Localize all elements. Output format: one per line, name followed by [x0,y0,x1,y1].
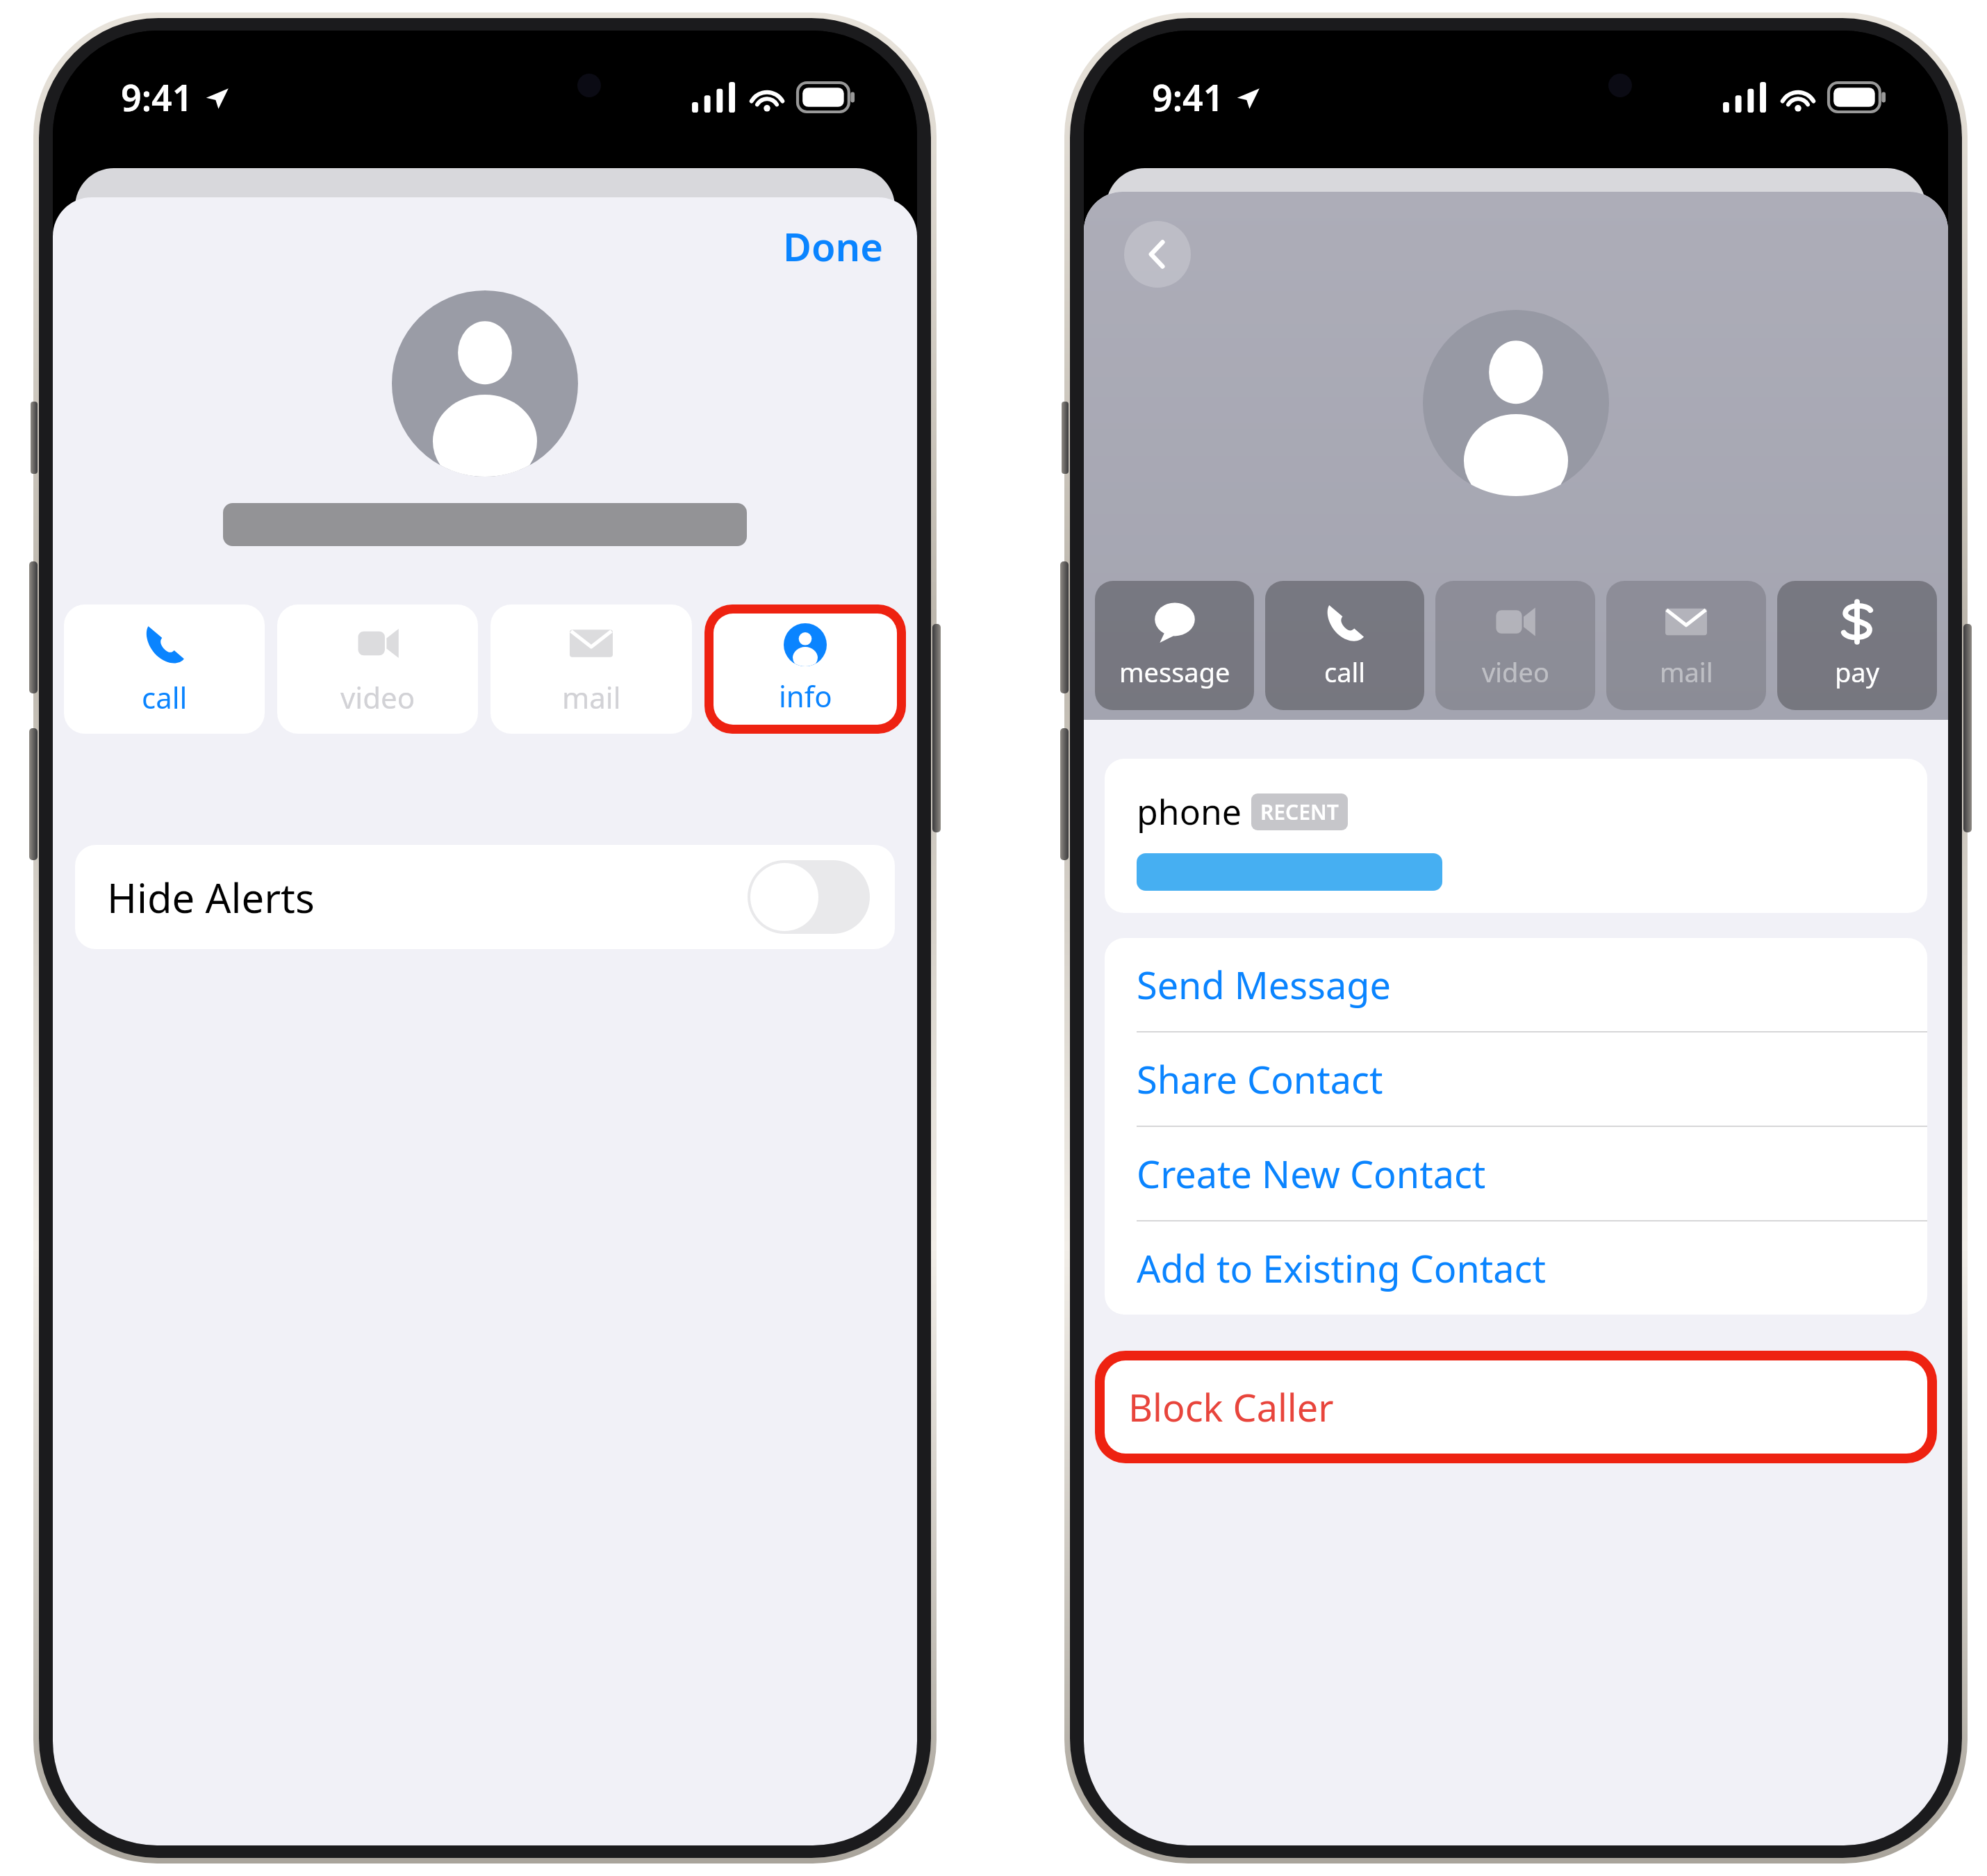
button[interactable]: Done [750,207,917,285]
staticText: mail [562,677,621,717]
button[interactable]: info [714,614,897,725]
staticText: call [1324,654,1366,690]
button[interactable]: Add to Existing Contact [1105,1221,1927,1315]
staticText: mail [1660,654,1713,690]
staticText: Create New Contact [1137,1148,1486,1199]
staticText: message [1119,654,1230,690]
button[interactable]: message [1095,581,1254,710]
button[interactable]: call [64,604,265,734]
button[interactable]: call [1265,581,1424,710]
staticText: video [1482,654,1549,690]
staticText: Done [783,220,884,272]
button[interactable]: Share Contact [1105,1032,1927,1127]
staticText: video [340,677,415,717]
staticText: Send Message [1137,959,1391,1010]
button[interactable]: video [1435,581,1595,710]
button[interactable]: Block Caller [1105,1360,1927,1454]
staticText: phone [1137,788,1242,835]
button[interactable]: video [277,604,478,734]
button[interactable]: pay [1777,581,1937,710]
staticText: pay [1835,654,1880,690]
staticText: info [779,676,832,716]
button[interactable]: phone [1105,759,1927,913]
button[interactable]: Send Message [1105,938,1927,1032]
staticText: Hide Alerts [107,870,315,925]
button[interactable]: mail [1606,581,1766,710]
staticText: 9:41 [1152,72,1224,122]
button[interactable]: Hide Alerts [75,845,895,949]
staticText: Share Contact [1137,1053,1383,1105]
button[interactable]: mail [490,604,692,734]
staticText: 9:41 [121,72,193,122]
staticText: RECENT [1260,798,1339,826]
staticText: Block Caller [1128,1381,1334,1433]
staticText: call [142,677,188,717]
button[interactable]: Back [1124,221,1191,288]
button[interactable]: Create New Contact [1105,1127,1927,1221]
staticText: Add to Existing Contact [1137,1242,1546,1294]
